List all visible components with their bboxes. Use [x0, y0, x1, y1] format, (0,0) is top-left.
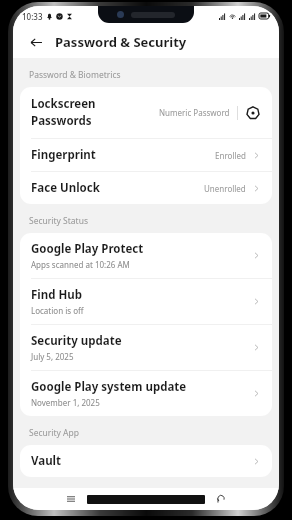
staticText: 10:33 [22, 11, 43, 22]
button[interactable]: Face Unlock [20, 172, 272, 204]
staticText: November 1, 2025 [31, 397, 100, 408]
button[interactable]: Fingerprint [20, 139, 272, 171]
staticText: Password & Biometrics [29, 69, 121, 81]
button[interactable]: Lockscreen password settings [245, 105, 261, 121]
button[interactable]: Find Hub [20, 279, 272, 324]
staticText: Lockscreen [31, 96, 96, 112]
staticText: Security update [31, 333, 122, 349]
button[interactable]: Google Play Protect [20, 233, 272, 278]
staticText: Passwords [31, 113, 92, 129]
button[interactable]: Back [25, 31, 47, 53]
staticText: Face Unlock [31, 180, 100, 196]
staticText: July 5, 2025 [31, 351, 74, 362]
button[interactable]: Security update [20, 325, 272, 370]
button[interactable]: Google Play system update [20, 371, 272, 416]
staticText: Enrolled [215, 150, 246, 161]
button[interactable]: Vault [20, 445, 272, 477]
staticText: Google Play Protect [31, 241, 144, 257]
staticText: Fingerprint [31, 147, 96, 163]
button[interactable]: Recents [61, 489, 81, 509]
staticText: Location is off [31, 305, 84, 316]
staticText: Vault [31, 453, 62, 469]
staticText: Security Status [29, 215, 89, 227]
staticText: Password & Security [55, 33, 187, 51]
staticText: Security App [29, 427, 79, 439]
staticText: Numeric Password [159, 107, 230, 118]
button[interactable]: Lockscreen [20, 87, 272, 138]
button[interactable]: Back [211, 489, 231, 509]
staticText: Google Play system update [31, 379, 187, 395]
staticText: Unenrolled [204, 183, 246, 194]
staticText: Apps scanned at 10:26 AM [31, 259, 130, 270]
staticText: Find Hub [31, 287, 83, 303]
button[interactable]: Home [87, 495, 205, 504]
